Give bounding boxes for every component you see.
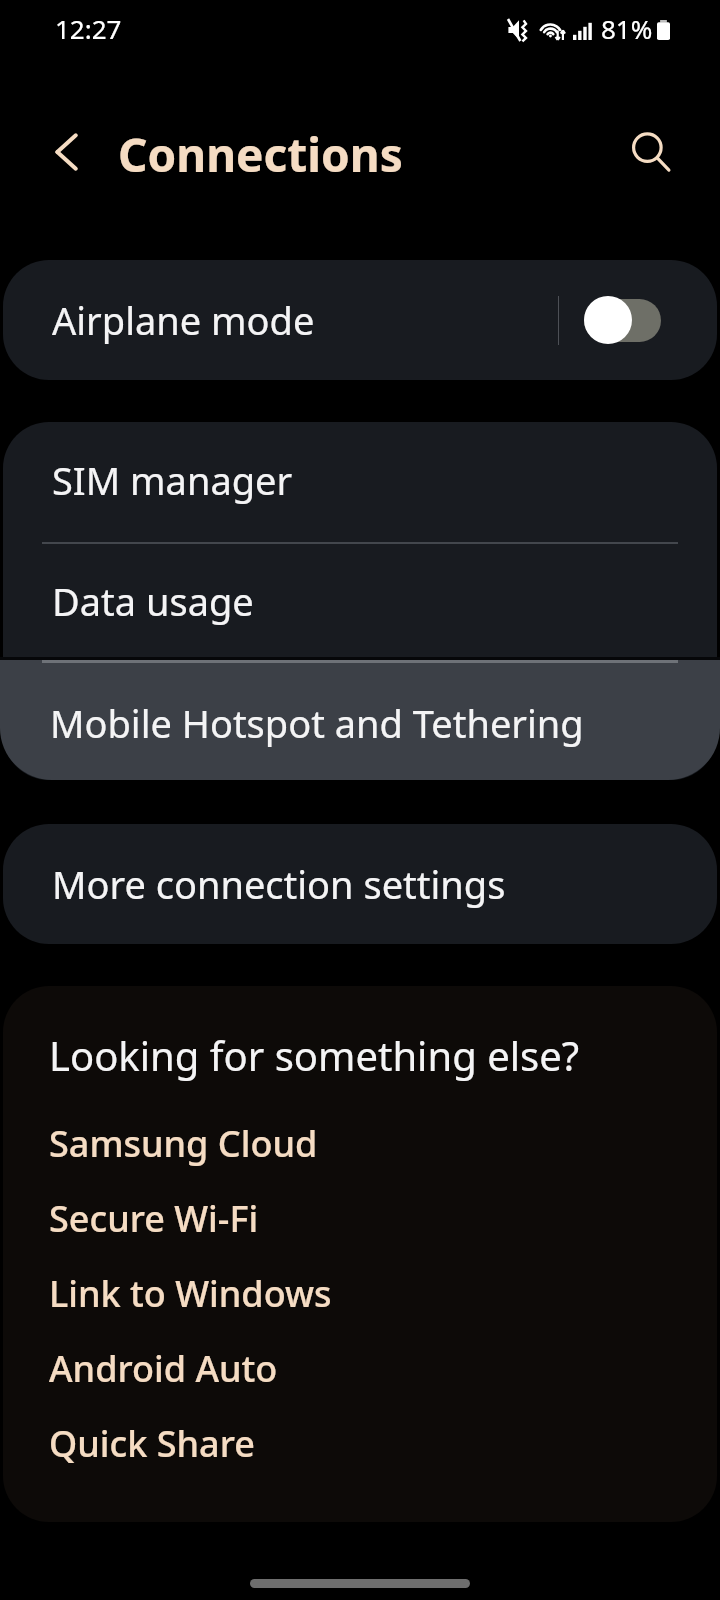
button[interactable]: Data usage (3, 544, 717, 657)
button[interactable]: Secure Wi-Fi (3, 1178, 717, 1253)
button[interactable]: Search (622, 124, 678, 180)
staticText: Looking for something else? (49, 1028, 580, 1082)
staticText: Connections (118, 123, 403, 186)
button[interactable]: Mobile Hotspot and Tethering (0, 660, 720, 780)
staticText: Android Auto (49, 1344, 278, 1393)
button[interactable]: More connection settings (3, 824, 717, 944)
button[interactable]: Samsung Cloud (3, 1103, 717, 1178)
staticText: Link to Windows (49, 1269, 332, 1318)
staticText: 81% (601, 11, 653, 46)
button[interactable]: Quick Share (3, 1403, 717, 1478)
staticText: Quick Share (49, 1419, 255, 1468)
button[interactable]: Link to Windows (3, 1253, 717, 1328)
button[interactable]: Back (36, 121, 98, 183)
staticText: Samsung Cloud (49, 1119, 318, 1168)
staticText: SIM manager (52, 454, 293, 506)
staticText: Airplane mode (52, 294, 315, 346)
staticText: Mobile Hotspot and Tethering (50, 697, 584, 749)
button[interactable]: Airplane mode switch, off (584, 296, 661, 344)
button[interactable]: SIM manager (3, 422, 717, 538)
staticText: Data usage (52, 575, 254, 627)
button[interactable]: Android Auto (3, 1328, 717, 1403)
button[interactable]: Airplane mode (3, 260, 717, 380)
staticText: More connection settings (52, 858, 506, 910)
staticText: Secure Wi-Fi (49, 1194, 259, 1243)
staticText: 12:27 (55, 11, 122, 46)
